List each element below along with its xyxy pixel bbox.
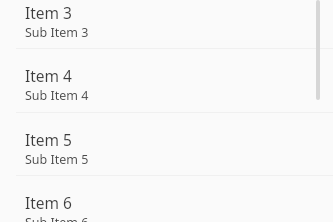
staticText: Sub Item 4 (25, 87, 89, 104)
staticText: Item 4 (25, 65, 72, 86)
staticText: Sub Item 6 (25, 214, 89, 222)
staticText: Item 3 (25, 2, 72, 23)
button[interactable]: Item 3 (0, 0, 333, 48)
staticText: Sub Item 5 (25, 151, 89, 168)
button[interactable]: Item 4 (0, 49, 333, 112)
staticText: Sub Item 3 (25, 24, 89, 41)
button[interactable]: Item 5 (0, 113, 333, 175)
button[interactable]: Item 6 (0, 176, 333, 222)
staticText: Item 6 (25, 192, 72, 213)
staticText: Item 5 (25, 129, 72, 150)
